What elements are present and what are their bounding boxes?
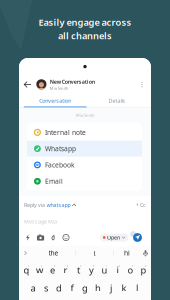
button[interactable]: + Cc	[132, 201, 146, 209]
staticText: New Conversation	[50, 78, 95, 85]
staticText: Email	[45, 177, 63, 186]
button[interactable]: 0	[137, 261, 150, 276]
staticText: o	[127, 264, 133, 276]
button[interactable]	[78, 279, 91, 294]
staticText: e	[50, 264, 55, 276]
staticText: Message Mia	[24, 218, 57, 225]
staticText: w	[36, 264, 43, 276]
staticText: I	[93, 249, 95, 257]
button[interactable]	[65, 279, 78, 294]
staticText: 0	[145, 264, 147, 267]
staticText: Open	[107, 234, 120, 241]
button[interactable]: More options	[136, 74, 148, 95]
button[interactable]	[117, 279, 130, 294]
staticText: a	[30, 282, 35, 294]
button[interactable]: Whatsapp	[27, 140, 142, 157]
button[interactable]	[104, 279, 117, 294]
staticText: 1	[28, 264, 30, 267]
button[interactable]: Details	[88, 95, 145, 107]
button[interactable]: 3	[46, 261, 59, 276]
staticText: Whatsapp	[45, 144, 76, 153]
staticText: Easily engage across	[38, 16, 131, 28]
button[interactable]: Send	[130, 231, 144, 244]
button[interactable]: 7	[98, 261, 111, 276]
staticText: 9	[132, 264, 134, 267]
button[interactable]: Email	[27, 173, 142, 189]
staticText: y	[89, 264, 94, 276]
staticText: k	[121, 282, 126, 294]
staticText: + Cc	[136, 201, 146, 209]
button[interactable]: 5	[72, 261, 85, 276]
staticText: h	[95, 282, 101, 294]
staticText: 8	[119, 264, 121, 267]
staticText: Mia Smith	[76, 112, 94, 118]
button[interactable]	[91, 279, 104, 294]
button[interactable]: 6	[85, 261, 98, 276]
button[interactable]	[39, 279, 52, 294]
staticText: q	[23, 264, 29, 276]
staticText: d	[56, 282, 62, 294]
button[interactable]: Internal note	[27, 124, 142, 140]
staticText: Facebook	[45, 160, 75, 169]
button[interactable]: 4	[59, 261, 72, 276]
button[interactable]	[26, 279, 39, 294]
staticText: 6	[93, 264, 95, 267]
button[interactable]: Back	[20, 74, 34, 95]
staticText: whatsapp	[46, 201, 70, 209]
button[interactable]: Conversation	[22, 95, 88, 107]
staticText: Internal note	[45, 128, 86, 137]
button[interactable]: the	[31, 246, 75, 259]
button[interactable]: Voice input	[140, 246, 150, 259]
staticText: 2	[41, 264, 43, 267]
button[interactable]: hi	[113, 246, 140, 259]
button[interactable]	[52, 279, 65, 294]
staticText: all channels	[58, 29, 112, 42]
button[interactable]: Open	[100, 233, 128, 242]
button[interactable]	[130, 279, 143, 294]
staticText: 4	[67, 264, 69, 267]
staticText: i	[116, 264, 118, 276]
staticText: j	[110, 282, 112, 294]
button[interactable]: 2	[33, 261, 46, 276]
staticText: s	[44, 282, 48, 294]
staticText: Reply via	[24, 201, 45, 209]
staticText: r	[63, 264, 67, 276]
staticText: 5	[80, 264, 82, 267]
staticText: 7	[106, 264, 108, 267]
staticText: u	[101, 264, 107, 276]
button[interactable]: Facebook	[27, 157, 142, 173]
button[interactable]: 1	[20, 261, 33, 276]
button[interactable]: Attach file	[47, 230, 60, 244]
staticText: f	[70, 282, 73, 294]
button[interactable]: 9	[124, 261, 137, 276]
button[interactable]: Camera	[34, 230, 47, 244]
staticText: Details	[108, 97, 125, 104]
staticText: Mia Smith	[50, 86, 68, 91]
button[interactable]: Quick replies	[21, 230, 34, 244]
staticText: t	[77, 264, 80, 276]
staticText: Conversation	[39, 97, 71, 104]
staticText: 3	[54, 264, 56, 267]
button[interactable]: I	[76, 246, 113, 259]
staticText: the	[48, 249, 58, 257]
staticText: g	[82, 282, 88, 294]
button[interactable]: Emoji	[60, 230, 72, 244]
button[interactable]: 8	[111, 261, 124, 276]
staticText: l	[136, 282, 138, 294]
staticText: hi	[124, 249, 130, 257]
staticText: p	[140, 264, 146, 276]
button[interactable]: More suggestions	[19, 246, 31, 259]
